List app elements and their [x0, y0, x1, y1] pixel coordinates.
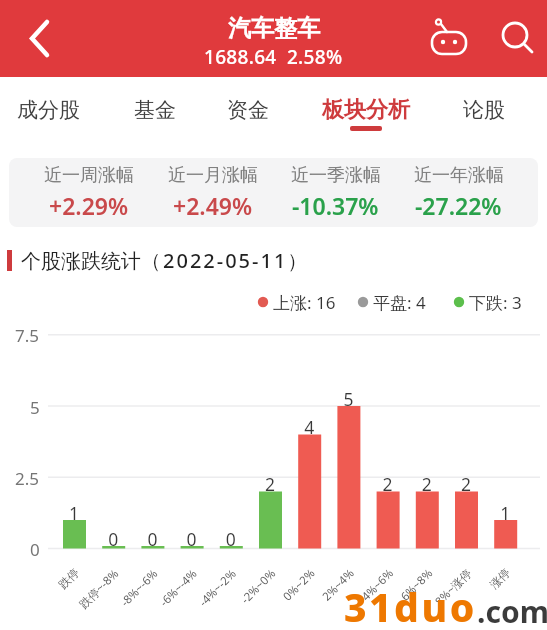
button[interactable]: 成分股 — [0, 85, 103, 135]
button[interactable]: 资金 — [193, 85, 303, 135]
button[interactable] — [0, 0, 70, 77]
staticText: 近一季涨幅 — [291, 164, 381, 187]
button[interactable]: 基金 — [100, 85, 210, 135]
staticText: +2.49% — [173, 190, 253, 221]
staticText: 板块分析 — [322, 96, 410, 124]
button[interactable] — [496, 14, 540, 62]
button[interactable]: 论股 — [429, 85, 539, 135]
staticText: +2.29% — [49, 190, 129, 221]
staticText: 近一年涨幅 — [414, 164, 504, 187]
staticText: -27.22% — [415, 190, 502, 221]
staticText: 汽车整车 — [228, 14, 320, 43]
staticText: 基金 — [134, 97, 176, 123]
staticText: 个股涨跌统计（2022-05-11） — [21, 247, 310, 274]
staticText: 近一月涨幅 — [168, 164, 258, 187]
staticText: 论股 — [463, 97, 505, 123]
staticText: 资金 — [227, 97, 269, 123]
staticText: 1688.64 2.58% — [204, 44, 343, 70]
button[interactable]: 板块分析 — [311, 85, 421, 135]
staticText: 近一周涨幅 — [44, 164, 134, 187]
button[interactable] — [422, 12, 478, 64]
staticText: -10.37% — [292, 190, 379, 221]
staticText: 成分股 — [17, 97, 80, 123]
